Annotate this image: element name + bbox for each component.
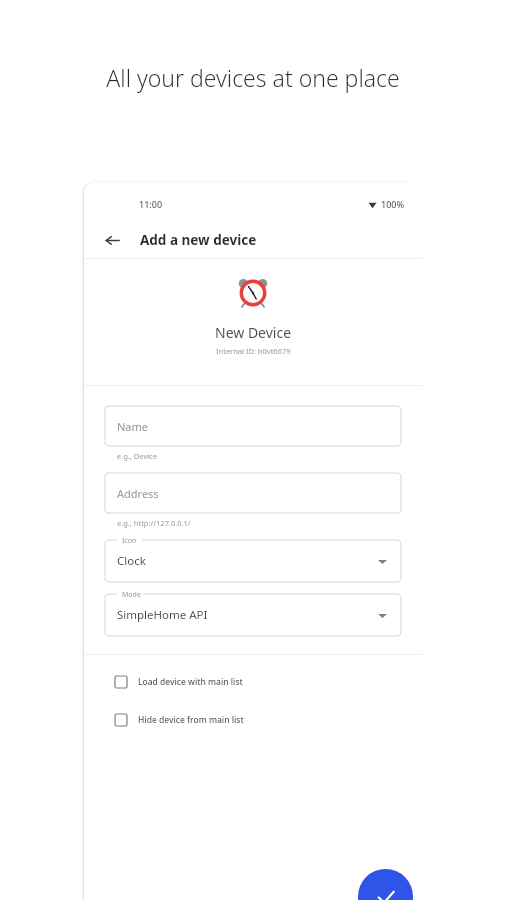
staticText: Name bbox=[117, 419, 149, 434]
staticText: Address bbox=[117, 486, 159, 501]
staticText: SimpleHome API bbox=[117, 607, 208, 623]
button[interactable]: Mode bbox=[105, 594, 401, 636]
staticText: Internal ID: h0vt6679 bbox=[216, 346, 291, 356]
staticText: e.g., Device bbox=[117, 451, 157, 461]
staticText: Load device with main list bbox=[138, 676, 243, 688]
staticText: Hide device from main list bbox=[138, 714, 244, 726]
staticText: e.g., http://127.0.0.1/ bbox=[117, 518, 191, 528]
button[interactable]: Confirm bbox=[358, 869, 413, 900]
staticText: 11:00 bbox=[139, 198, 163, 210]
staticText: New Device bbox=[215, 323, 292, 342]
staticText: Clock bbox=[117, 553, 146, 569]
button[interactable]: Back bbox=[96, 224, 128, 256]
staticText: All your devices at one place bbox=[106, 62, 400, 93]
staticText: Mode bbox=[122, 590, 141, 600]
button[interactable]: Load device with main list bbox=[105, 671, 401, 693]
button[interactable]: Address bbox=[105, 473, 401, 513]
staticText: 100% bbox=[381, 198, 405, 210]
button[interactable]: Name bbox=[105, 406, 401, 446]
button[interactable]: Hide device from main list bbox=[105, 709, 401, 731]
button[interactable]: Icon bbox=[105, 540, 401, 582]
staticText: Icon bbox=[122, 536, 137, 546]
staticText: Add a new device bbox=[140, 231, 257, 249]
